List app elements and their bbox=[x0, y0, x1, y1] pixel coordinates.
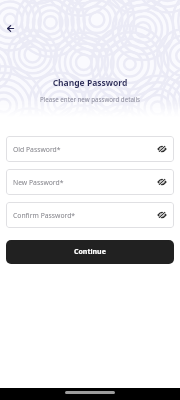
button[interactable]: Confirm Password* bbox=[6, 202, 174, 228]
staticText: Continue bbox=[74, 247, 106, 257]
button[interactable]: Continue bbox=[6, 240, 174, 264]
staticText: Change Password bbox=[0, 77, 180, 89]
staticText: Confirm Password* bbox=[13, 211, 76, 220]
button[interactable]: Toggle password visibility bbox=[155, 142, 169, 156]
staticText: Old Password* bbox=[13, 145, 61, 154]
button[interactable]: Back bbox=[1, 19, 19, 37]
staticText: New Password* bbox=[13, 178, 64, 187]
button[interactable]: Old Password* bbox=[6, 136, 174, 162]
button[interactable]: Toggle password visibility bbox=[155, 175, 169, 189]
button[interactable]: New Password* bbox=[6, 169, 174, 195]
button[interactable]: Toggle password visibility bbox=[155, 208, 169, 222]
staticText: Please enter new password details bbox=[0, 95, 180, 103]
